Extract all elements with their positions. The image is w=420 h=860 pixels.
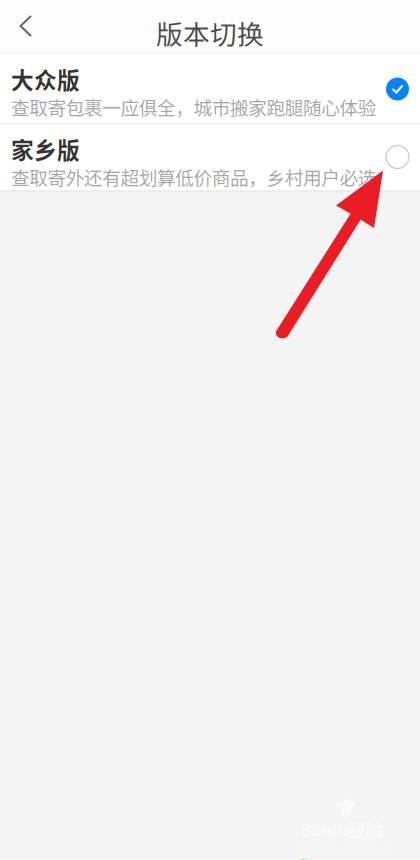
button[interactable]: 家乡版: [0, 124, 420, 190]
staticText: 查取寄包裹一应俱全，城市搬家跑腿随心体验: [11, 93, 377, 120]
staticText: jingyan.baidu.com: [300, 842, 395, 860]
button[interactable]: Back: [0, 0, 48, 52]
staticText: 版本切换: [156, 13, 264, 52]
staticText: 家乡版: [11, 132, 80, 165]
staticText: 查取寄外还有超划算低价商品，乡村用户必选: [11, 163, 377, 190]
staticText: 大众版: [11, 62, 80, 95]
button[interactable]: 大众版: [0, 53, 420, 123]
